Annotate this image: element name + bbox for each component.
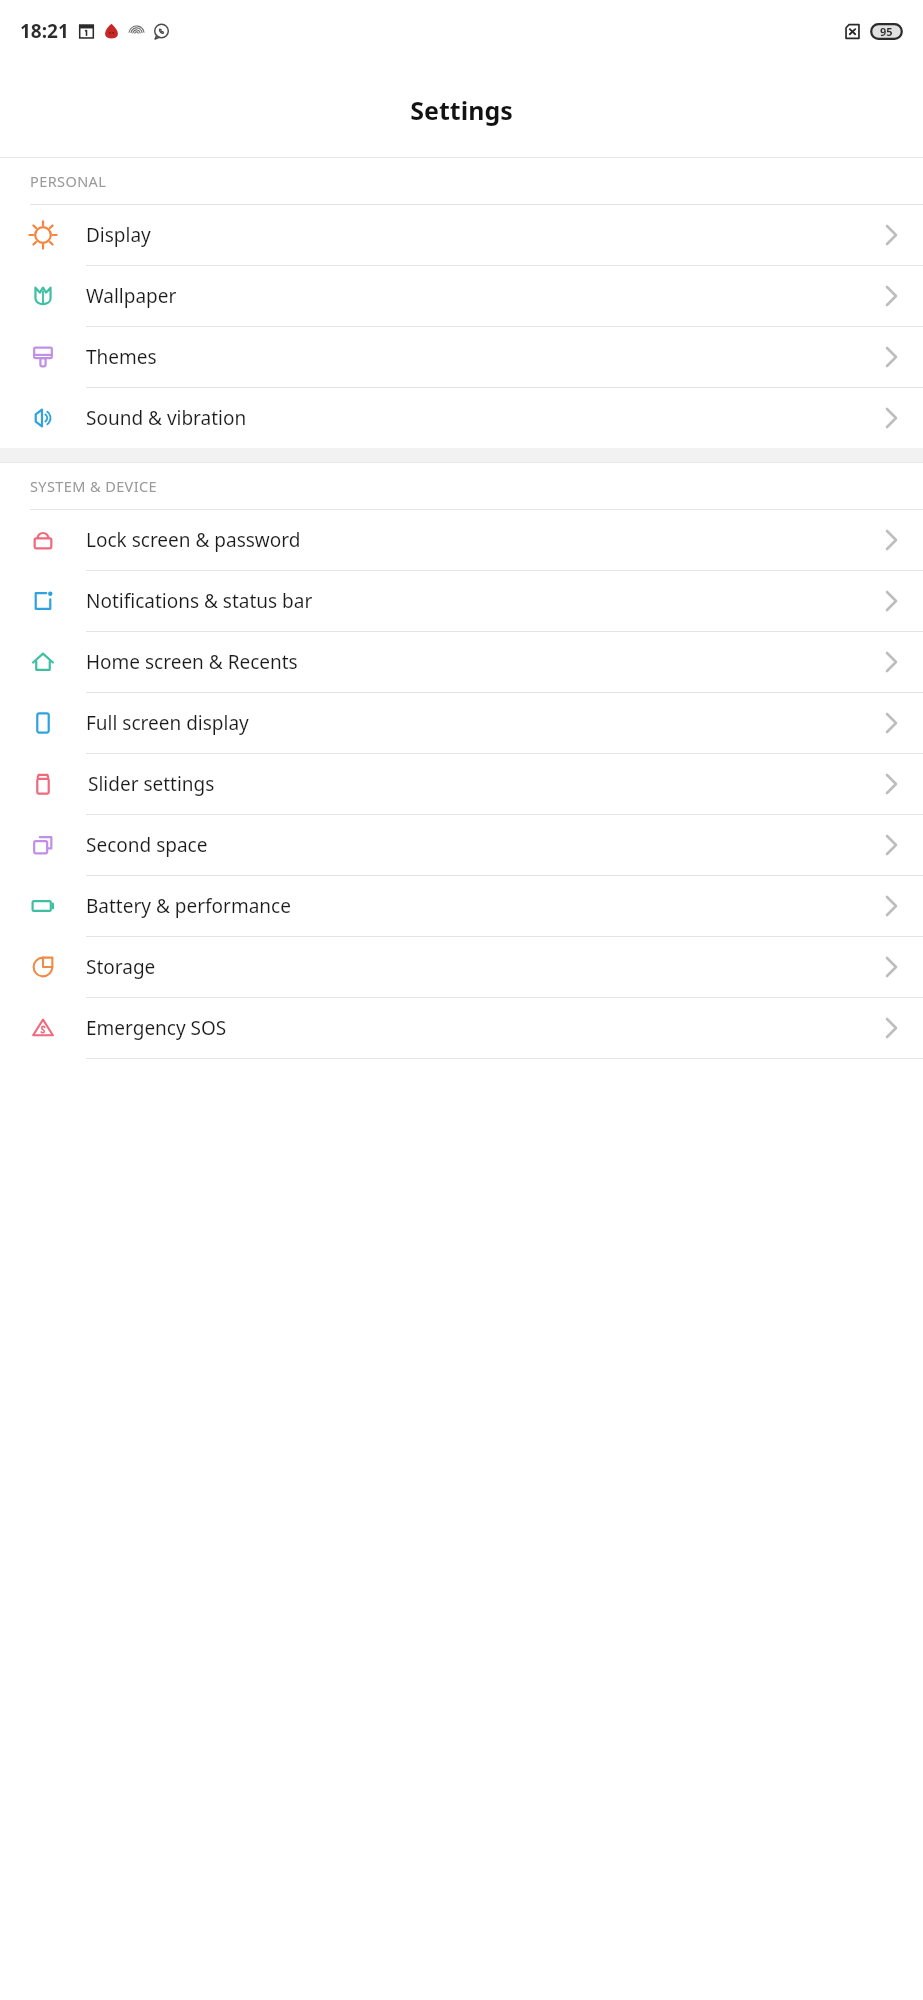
button[interactable]: Slider settings: [0, 754, 923, 814]
button[interactable]: Second space: [0, 815, 923, 875]
staticText: 18:21: [20, 18, 69, 44]
staticText: Emergency SOS: [86, 1015, 886, 1041]
button[interactable]: Full screen display: [0, 693, 923, 753]
staticText: Settings: [410, 93, 513, 127]
staticText: 95: [880, 24, 893, 39]
staticText: Wallpaper: [86, 283, 886, 309]
button[interactable]: Battery & performance: [0, 876, 923, 936]
staticText: Display: [86, 222, 886, 248]
button[interactable]: Themes: [0, 327, 923, 387]
staticText: Full screen display: [86, 710, 886, 736]
staticText: Battery & performance: [86, 893, 886, 919]
staticText: Storage: [86, 954, 886, 980]
staticText: Sound & vibration: [86, 405, 886, 431]
button[interactable]: Storage: [0, 937, 923, 997]
button[interactable]: Sound & vibration: [0, 388, 923, 448]
staticText: Second space: [86, 832, 886, 858]
button[interactable]: Notifications & status bar: [0, 571, 923, 631]
button[interactable]: Display: [0, 205, 923, 265]
staticText: SYSTEM & DEVICE: [30, 476, 158, 496]
button[interactable]: Wallpaper: [0, 266, 923, 326]
staticText: Slider settings: [88, 771, 886, 797]
staticText: Lock screen & password: [86, 527, 886, 553]
staticText: Home screen & Recents: [86, 649, 886, 675]
button[interactable]: Home screen & Recents: [0, 632, 923, 692]
staticText: PERSONAL: [30, 171, 107, 191]
button[interactable]: Emergency SOS: [0, 998, 923, 1058]
staticText: Themes: [86, 344, 886, 370]
button[interactable]: Lock screen & password: [0, 510, 923, 570]
staticText: Notifications & status bar: [86, 588, 886, 614]
